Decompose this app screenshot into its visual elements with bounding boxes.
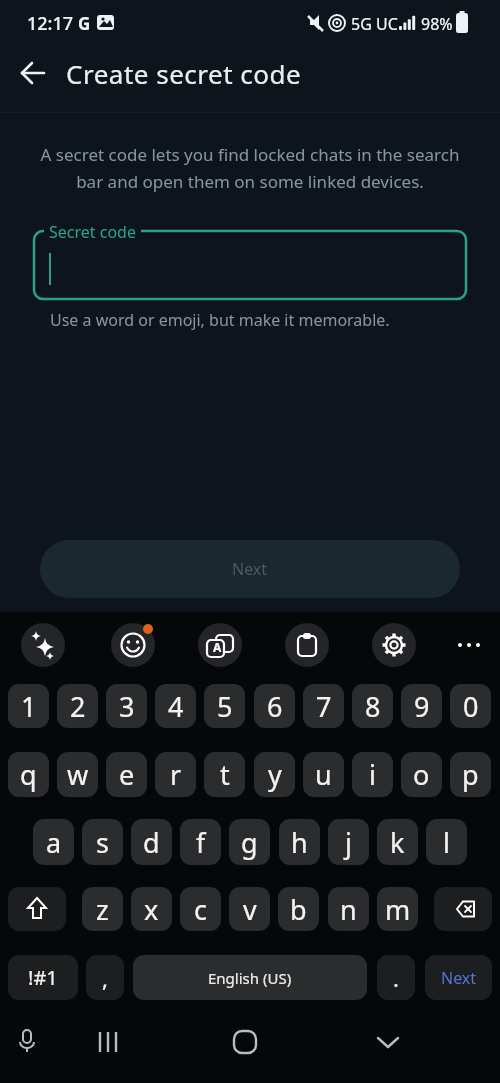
button[interactable]: u <box>303 752 344 797</box>
button[interactable]: m <box>377 887 418 931</box>
staticText: A <box>213 639 222 655</box>
button[interactable]: x <box>131 887 172 931</box>
button[interactable] <box>434 887 492 931</box>
button[interactable]: e <box>106 752 147 797</box>
staticText: v <box>243 891 257 928</box>
button[interactable]: f <box>180 819 221 865</box>
button[interactable] <box>366 1025 410 1069</box>
button[interactable]: 3 <box>106 684 147 728</box>
button[interactable] <box>5 1025 49 1069</box>
staticText: f <box>196 824 206 861</box>
button[interactable]: r <box>155 752 196 797</box>
button[interactable]: d <box>131 819 172 865</box>
button[interactable]: 8 <box>352 684 393 728</box>
button[interactable]: q <box>8 752 49 797</box>
button[interactable]: v <box>229 887 270 931</box>
staticText: Next <box>441 967 477 989</box>
button[interactable] <box>33 228 467 300</box>
staticText: Create secret code <box>66 56 302 91</box>
staticText: Next <box>232 558 268 580</box>
button[interactable]: b <box>278 887 319 931</box>
button[interactable]: Next <box>425 955 492 1000</box>
staticText: x <box>144 891 159 928</box>
staticText: l <box>443 824 450 861</box>
button[interactable]: p <box>450 752 491 797</box>
button[interactable]: Next <box>40 540 460 598</box>
staticText: b <box>290 891 307 928</box>
button[interactable] <box>8 887 66 931</box>
button[interactable]: g <box>229 819 270 865</box>
staticText: G <box>78 12 91 35</box>
staticText: u <box>315 756 332 793</box>
staticText: Use a word or emoji, but make it memorab… <box>50 309 390 331</box>
staticText: m <box>385 891 411 928</box>
button[interactable] <box>21 623 65 667</box>
button[interactable] <box>447 623 491 667</box>
staticText: , <box>102 963 108 993</box>
staticText: z <box>96 891 109 928</box>
button[interactable]: s <box>82 819 123 865</box>
staticText: 3 <box>119 688 135 725</box>
staticText: 7 <box>316 688 332 725</box>
staticText: r <box>170 756 182 793</box>
staticText: h <box>291 824 308 861</box>
button[interactable]: 0 <box>450 684 491 728</box>
button[interactable]: 6 <box>254 684 295 728</box>
staticText: !#1 <box>28 964 58 991</box>
staticText: 5 <box>217 688 233 725</box>
staticText: n <box>340 891 357 928</box>
staticText: j <box>345 824 352 861</box>
staticText: 0 <box>463 688 479 725</box>
button[interactable]: t <box>204 752 245 797</box>
button[interactable]: 7 <box>303 684 344 728</box>
button[interactable]: 2 <box>57 684 98 728</box>
button[interactable]: i <box>352 752 393 797</box>
staticText: d <box>143 824 160 861</box>
button[interactable]: 9 <box>401 684 442 728</box>
staticText: o <box>413 756 430 793</box>
staticText: Secret code <box>49 221 136 243</box>
button[interactable]: h <box>279 819 320 865</box>
button[interactable]: o <box>401 752 442 797</box>
staticText: . <box>393 963 399 993</box>
button[interactable]: n <box>328 887 369 931</box>
button[interactable]: 5 <box>204 684 245 728</box>
staticText: a <box>46 824 62 861</box>
staticText: w <box>67 756 89 793</box>
staticText: 6 <box>267 688 283 725</box>
button[interactable]: c <box>180 887 221 931</box>
button[interactable]: a <box>33 819 74 865</box>
staticText: 98% <box>421 13 453 35</box>
button[interactable] <box>223 1025 267 1069</box>
staticText: 2 <box>70 688 86 725</box>
staticText: English (US) <box>208 968 292 988</box>
button[interactable]: 4 <box>155 684 196 728</box>
staticText: A secret code lets you find locked chats… <box>0 143 500 193</box>
button[interactable]: 1 <box>8 684 49 728</box>
button[interactable]: , <box>86 955 124 1000</box>
staticText: g <box>241 824 258 861</box>
staticText: 1 <box>21 688 37 725</box>
button[interactable]: w <box>57 752 98 797</box>
button[interactable]: l <box>426 819 467 865</box>
button[interactable] <box>11 51 55 95</box>
button[interactable] <box>111 623 155 667</box>
button[interactable]: k <box>377 819 418 865</box>
button[interactable] <box>86 1025 130 1069</box>
staticText: t <box>220 756 230 793</box>
button[interactable]: A <box>198 623 242 667</box>
button[interactable] <box>372 623 416 667</box>
button[interactable]: y <box>254 752 295 797</box>
button[interactable]: j <box>328 819 369 865</box>
button[interactable]: z <box>82 887 123 931</box>
button[interactable]: English (US) <box>133 955 367 1000</box>
staticText: 12:17 <box>27 11 74 36</box>
button[interactable]: . <box>377 955 415 1000</box>
staticText: 4 <box>168 688 184 725</box>
button[interactable]: !#1 <box>8 955 78 1000</box>
button[interactable] <box>285 623 329 667</box>
staticText: i <box>369 756 376 793</box>
staticText: 8 <box>365 688 381 725</box>
staticText: q <box>20 756 37 793</box>
staticText: e <box>119 756 135 793</box>
